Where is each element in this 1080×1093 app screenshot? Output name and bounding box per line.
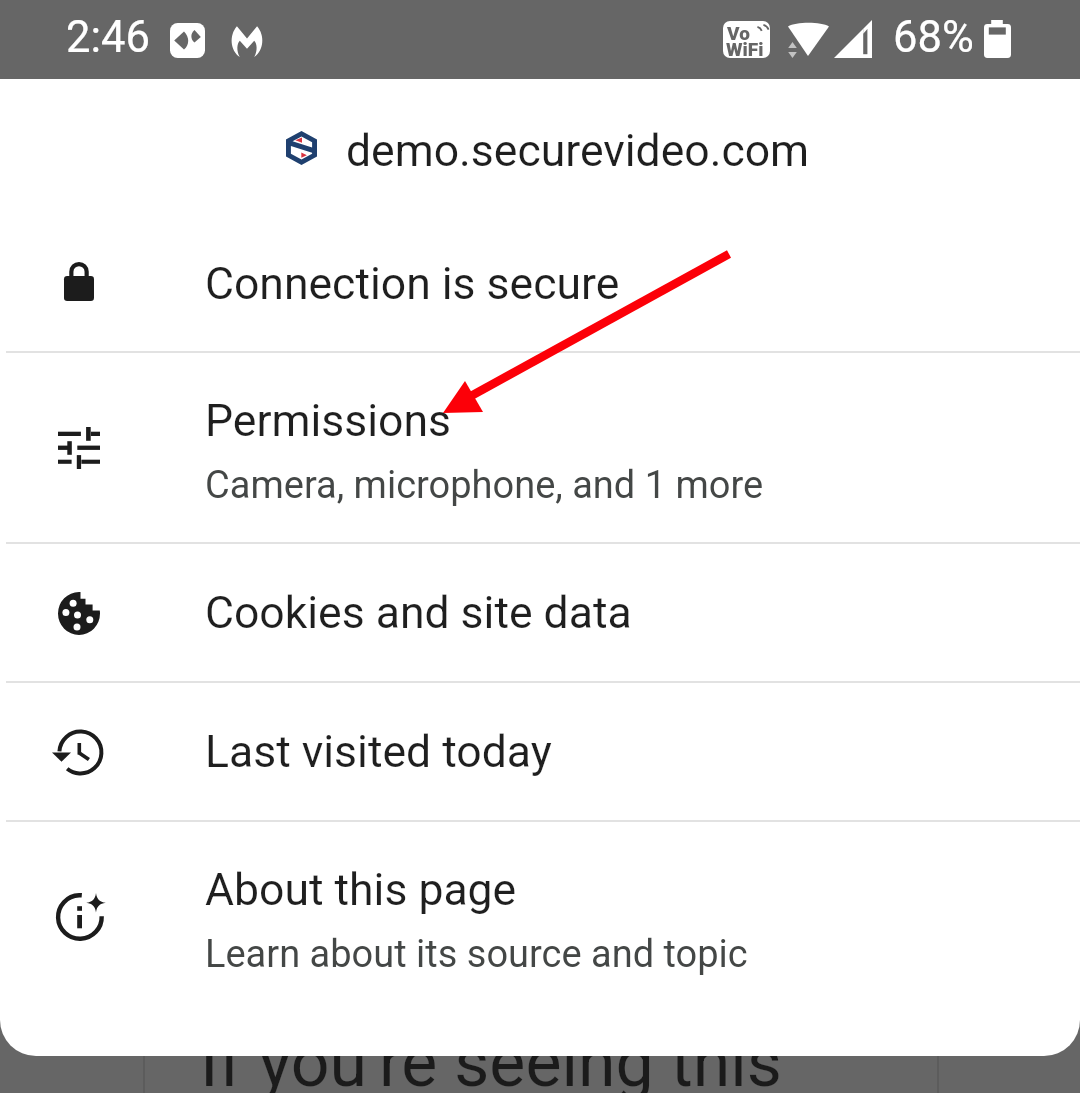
- staticText: Permissions: [205, 395, 451, 447]
- staticText: 2:46: [66, 12, 150, 63]
- button[interactable]: Cookies and site data: [0, 544, 1080, 682]
- button[interactable]: Connection is secure: [0, 219, 1080, 349]
- staticText: About this page: [205, 864, 517, 916]
- staticText: Camera, microphone, and 1 more: [205, 463, 764, 508]
- staticText: Vo: [727, 22, 750, 44]
- staticText: If you're seeing this: [200, 1023, 782, 1093]
- button[interactable]: Permissions: [0, 353, 1080, 543]
- staticText: demo.securevideo.com: [346, 125, 810, 177]
- staticText: Connection is secure: [205, 258, 620, 310]
- staticText: Cookies and site data: [205, 587, 632, 639]
- staticText: 68%: [893, 12, 974, 63]
- button[interactable]: About this page: [0, 822, 1080, 1012]
- staticText: Learn about its source and topic: [205, 932, 748, 977]
- staticText: WiFi: [726, 38, 764, 58]
- staticText: Last visited today: [205, 726, 552, 778]
- button[interactable]: Last visited today: [0, 683, 1080, 821]
